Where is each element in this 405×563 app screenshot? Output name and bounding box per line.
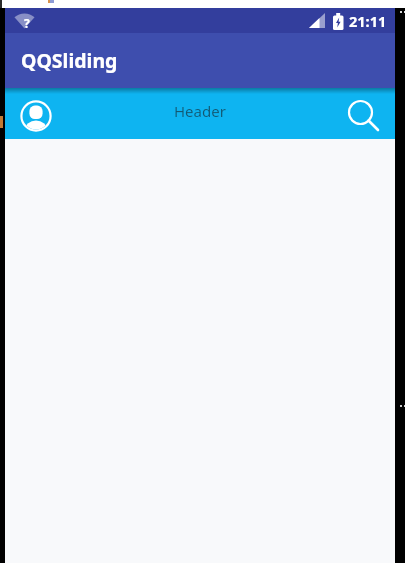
button[interactable] [343,96,387,140]
staticText: QQSliding [21,47,118,74]
button[interactable] [19,99,53,133]
staticText: Header [174,101,226,121]
staticText: 21:11 [349,11,387,31]
staticText: ? [24,15,30,31]
